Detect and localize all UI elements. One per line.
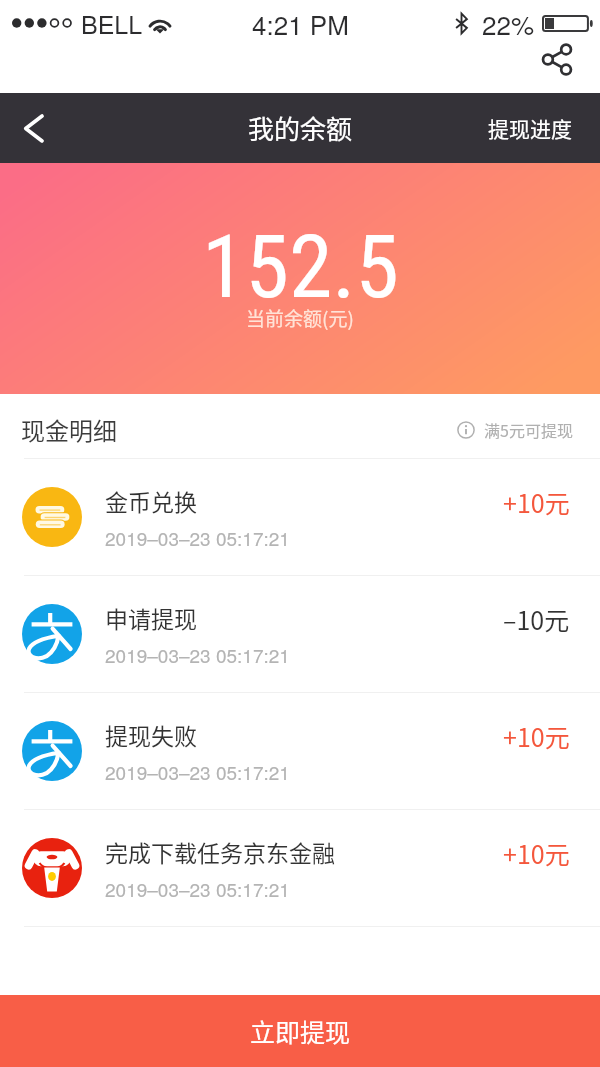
staticText: 4:21 PM [252, 5, 349, 42]
staticText: 提现失败 [105, 718, 197, 751]
button[interactable]: 完成下载任务京东金融 [0, 810, 600, 926]
staticText: +10元 [503, 835, 570, 871]
staticText: +10元 [503, 484, 570, 520]
staticText: 2019–03–23 05:17:21 [105, 758, 290, 785]
button[interactable]: Back [9, 104, 57, 152]
staticText: 现金明细 [21, 412, 117, 447]
button[interactable]: 金币兑换 [0, 459, 600, 575]
staticText: 满5元可提现 [484, 418, 573, 441]
staticText: 22% [482, 5, 535, 42]
staticText: BELL [81, 5, 143, 41]
button[interactable]: 申请提现 [0, 576, 600, 692]
staticText: –10元 [503, 601, 570, 637]
staticText: 我的余额 [248, 109, 353, 147]
staticText: 立即提现 [250, 1013, 351, 1049]
staticText: 申请提现 [105, 601, 197, 634]
button[interactable]: 提现进度 [480, 103, 580, 153]
staticText: +10元 [503, 718, 570, 754]
staticText: 完成下载任务京东金融 [105, 835, 335, 868]
staticText: 金币兑换 [105, 484, 197, 517]
staticText: 2019–03–23 05:17:21 [105, 524, 290, 551]
button[interactable]: Share [533, 36, 579, 82]
button[interactable]: 立即提现 [0, 995, 600, 1067]
staticText: 2019–03–23 05:17:21 [105, 641, 290, 668]
button[interactable]: 提现失败 [0, 693, 600, 809]
staticText: 提现进度 [488, 113, 572, 143]
staticText: 当前余额(元) [246, 304, 354, 332]
staticText: 2019–03–23 05:17:21 [105, 875, 290, 902]
staticText: 152.5 [202, 215, 399, 318]
